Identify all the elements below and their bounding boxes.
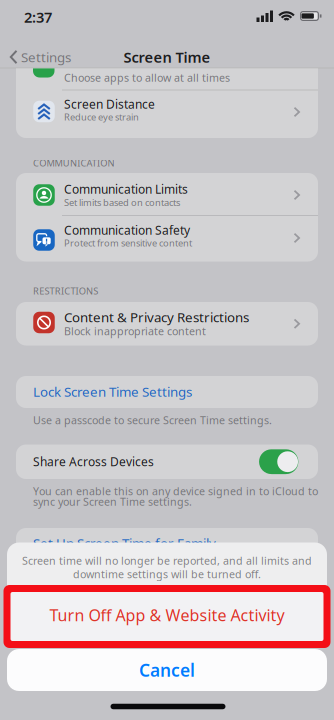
staticText: 2:37 — [24, 7, 52, 27]
button[interactable]: Share Across Devices — [259, 449, 298, 474]
button[interactable]: Turn Off App & Website Activity — [10, 592, 323, 641]
staticText: Communication Safety — [64, 222, 190, 238]
staticText: Screen Distance — [64, 96, 155, 112]
staticText: Content & Privacy Restrictions — [64, 308, 249, 326]
staticText: Screen time will no longer be reported, … — [22, 553, 312, 568]
staticText: Set Up Screen Time for Family — [33, 534, 216, 552]
staticText: RESTRICTIONS — [33, 285, 98, 297]
button[interactable]: Communication Limits — [16, 173, 318, 215]
staticText: downtime settings will be turned off. — [73, 567, 261, 581]
staticText: Protect from sensitive content — [64, 237, 192, 249]
button[interactable]: Settings — [0, 40, 92, 74]
staticText: You can enable this on any device signed… — [33, 484, 318, 498]
staticText: Settings — [21, 48, 71, 66]
staticText: Screen Time — [123, 47, 210, 67]
staticText: Choose apps to allow at all times — [64, 70, 230, 85]
button[interactable]: Set Up Screen Time for Family — [16, 528, 318, 558]
staticText: Use a passcode to secure Screen Time set… — [33, 413, 272, 427]
staticText: Lock Screen Time Settings — [33, 383, 192, 400]
staticText: Cancel — [139, 658, 195, 681]
staticText: Block inappropriate content — [64, 324, 206, 338]
button[interactable]: Lock Screen Time Settings — [16, 376, 318, 408]
staticText: Share Across Devices — [33, 453, 154, 469]
button[interactable]: Communication Safety — [16, 215, 318, 261]
staticText: Turn Off App & Website Activity — [49, 604, 284, 626]
button[interactable]: Content & Privacy Restrictions — [16, 302, 318, 345]
button[interactable]: Cancel — [7, 649, 327, 691]
button[interactable]: Screen Distance — [16, 90, 318, 138]
staticText: Communication Limits — [64, 181, 188, 197]
staticText: Set limits based on contacts — [64, 196, 180, 209]
staticText: Reduce eye strain — [64, 111, 139, 123]
staticText: sync your Screen Time settings. — [33, 494, 192, 509]
button[interactable]: Choose apps to allow at all times — [16, 68, 318, 90]
staticText: COMMUNICATION — [33, 157, 114, 169]
